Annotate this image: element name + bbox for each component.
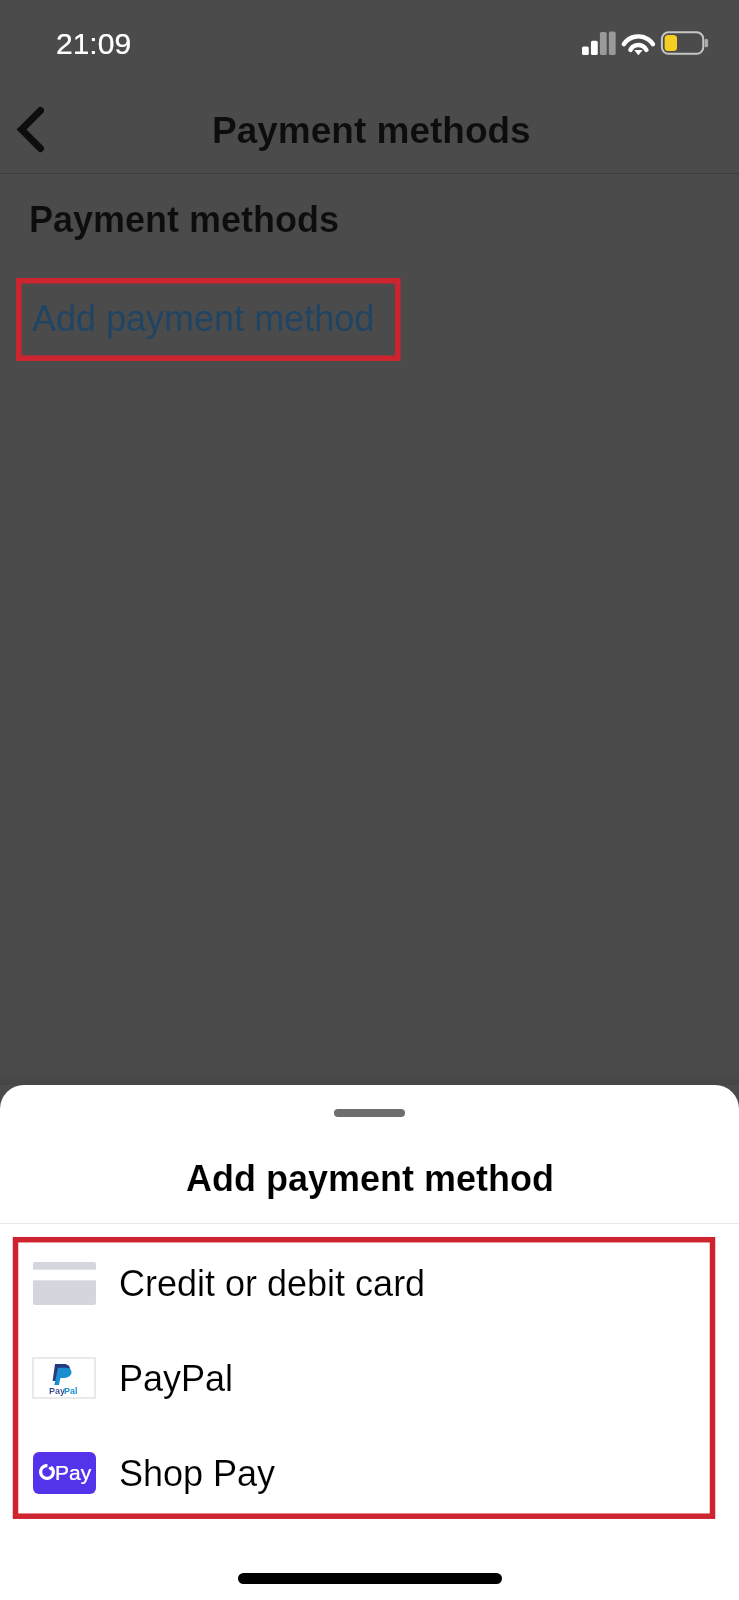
button[interactable]: Back bbox=[1, 99, 61, 159]
button[interactable]: Credit or debit card bbox=[0, 1235, 739, 1330]
staticText: Add payment method bbox=[32, 298, 375, 338]
staticText: Add payment method bbox=[186, 1158, 555, 1198]
button[interactable]: Pay bbox=[0, 1425, 739, 1520]
button[interactable]: Pay bbox=[0, 1330, 739, 1425]
staticText: Credit or debit card bbox=[119, 1263, 426, 1303]
button[interactable]: Add payment method bbox=[32, 298, 375, 338]
staticText: 21:09 bbox=[56, 27, 132, 61]
staticText: Shop Pay bbox=[119, 1453, 276, 1493]
staticText: PayPal bbox=[119, 1358, 234, 1398]
staticText: Pal bbox=[64, 1386, 78, 1396]
staticText: Payment methods bbox=[212, 110, 531, 151]
staticText: Payment methods bbox=[29, 199, 340, 239]
staticText: Pay bbox=[49, 1386, 66, 1396]
staticText: Pay bbox=[55, 1461, 92, 1484]
